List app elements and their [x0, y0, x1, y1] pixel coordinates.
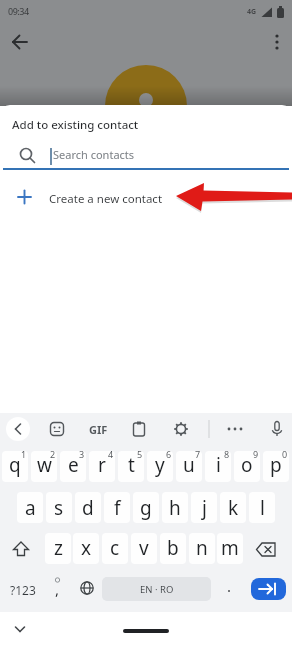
button[interactable]	[8, 618, 32, 640]
staticText: Create a new contact	[49, 191, 163, 207]
button[interactable]: n	[189, 533, 215, 563]
button[interactable]	[4, 535, 38, 565]
staticText: q	[9, 452, 21, 478]
staticText: w	[37, 452, 52, 478]
staticText: s	[54, 495, 64, 521]
staticText: l	[260, 495, 265, 521]
staticText: 4G	[247, 7, 257, 17]
staticText: z	[54, 535, 63, 561]
button[interactable]	[267, 419, 287, 439]
button[interactable]	[6, 417, 30, 441]
staticText: 5	[137, 448, 143, 460]
staticText: GIF	[89, 422, 108, 437]
button[interactable]: .	[219, 574, 239, 598]
button[interactable]	[265, 28, 289, 56]
staticText: f	[114, 495, 121, 521]
staticText: h	[169, 495, 181, 521]
staticText: 7	[195, 448, 201, 460]
button[interactable]	[225, 419, 245, 439]
staticText: Add to existing contact	[12, 117, 139, 133]
staticText: 9	[253, 448, 259, 460]
button[interactable]: Create a new contact	[0, 180, 292, 216]
button[interactable]: y	[147, 450, 173, 480]
button[interactable]: c	[102, 533, 128, 563]
button[interactable]	[76, 577, 98, 599]
button[interactable]: a	[17, 493, 43, 523]
staticText: c	[110, 535, 120, 561]
button[interactable]: l	[249, 493, 275, 523]
staticText: m	[221, 535, 239, 561]
staticText: 0	[282, 448, 288, 460]
staticText: 1	[21, 448, 27, 460]
staticText: j	[202, 495, 207, 521]
staticText: 8	[224, 448, 230, 460]
staticText: d	[82, 495, 94, 521]
button[interactable]: EN · RO	[102, 577, 211, 601]
staticText: k	[228, 495, 239, 521]
button[interactable]: j	[191, 493, 217, 523]
staticText: 09:34	[8, 5, 29, 17]
staticText: x	[81, 535, 92, 561]
staticText: 6	[166, 448, 172, 460]
staticText: i	[216, 452, 221, 478]
button[interactable]: q	[2, 450, 28, 480]
button[interactable]: h	[162, 493, 188, 523]
button[interactable]: w	[31, 450, 57, 480]
button[interactable]: x	[73, 533, 99, 563]
button[interactable]	[129, 419, 149, 439]
button[interactable]	[251, 578, 286, 600]
button[interactable]: f	[104, 493, 130, 523]
staticText: EN · RO	[140, 583, 174, 596]
staticText: v	[139, 535, 149, 561]
staticText: b	[167, 535, 179, 561]
button[interactable]	[6, 28, 34, 56]
button[interactable]: GIF	[68, 417, 128, 441]
button[interactable]: k	[220, 493, 246, 523]
button[interactable]: p	[263, 450, 289, 480]
staticText: Search contacts	[53, 147, 135, 162]
button[interactable]: Search contacts	[8, 140, 284, 168]
staticText: ,	[55, 579, 60, 599]
staticText: 2	[50, 448, 56, 460]
button[interactable]: o	[234, 450, 260, 480]
button[interactable]: b	[160, 533, 186, 563]
staticText: y	[155, 452, 165, 478]
button[interactable]: r	[89, 450, 115, 480]
button[interactable]: m	[217, 533, 243, 563]
button[interactable]: z	[45, 533, 71, 563]
staticText: t	[128, 452, 135, 478]
button[interactable]: u	[176, 450, 202, 480]
staticText: r	[98, 452, 106, 478]
button[interactable]: t	[118, 450, 144, 480]
button[interactable]: ?123	[2, 577, 44, 603]
button[interactable]: e	[60, 450, 86, 480]
button[interactable]: i	[205, 450, 231, 480]
staticText: g	[140, 495, 152, 521]
staticText: a	[25, 495, 36, 521]
button[interactable]	[47, 419, 67, 439]
button[interactable]: s	[46, 493, 72, 523]
button[interactable]: ,	[45, 574, 70, 602]
button[interactable]	[250, 535, 284, 565]
staticText: 3	[79, 448, 85, 460]
button[interactable]: d	[75, 493, 101, 523]
staticText: e	[68, 452, 79, 478]
button[interactable]: v	[131, 533, 157, 563]
staticText: 4	[108, 448, 114, 460]
button[interactable]: g	[133, 493, 159, 523]
staticText: n	[196, 535, 208, 561]
staticText: p	[270, 452, 282, 478]
staticText: u	[183, 452, 195, 478]
staticText: ?123	[10, 582, 36, 598]
button[interactable]	[171, 419, 191, 439]
staticText: o	[241, 452, 253, 478]
staticText: .	[227, 576, 232, 596]
